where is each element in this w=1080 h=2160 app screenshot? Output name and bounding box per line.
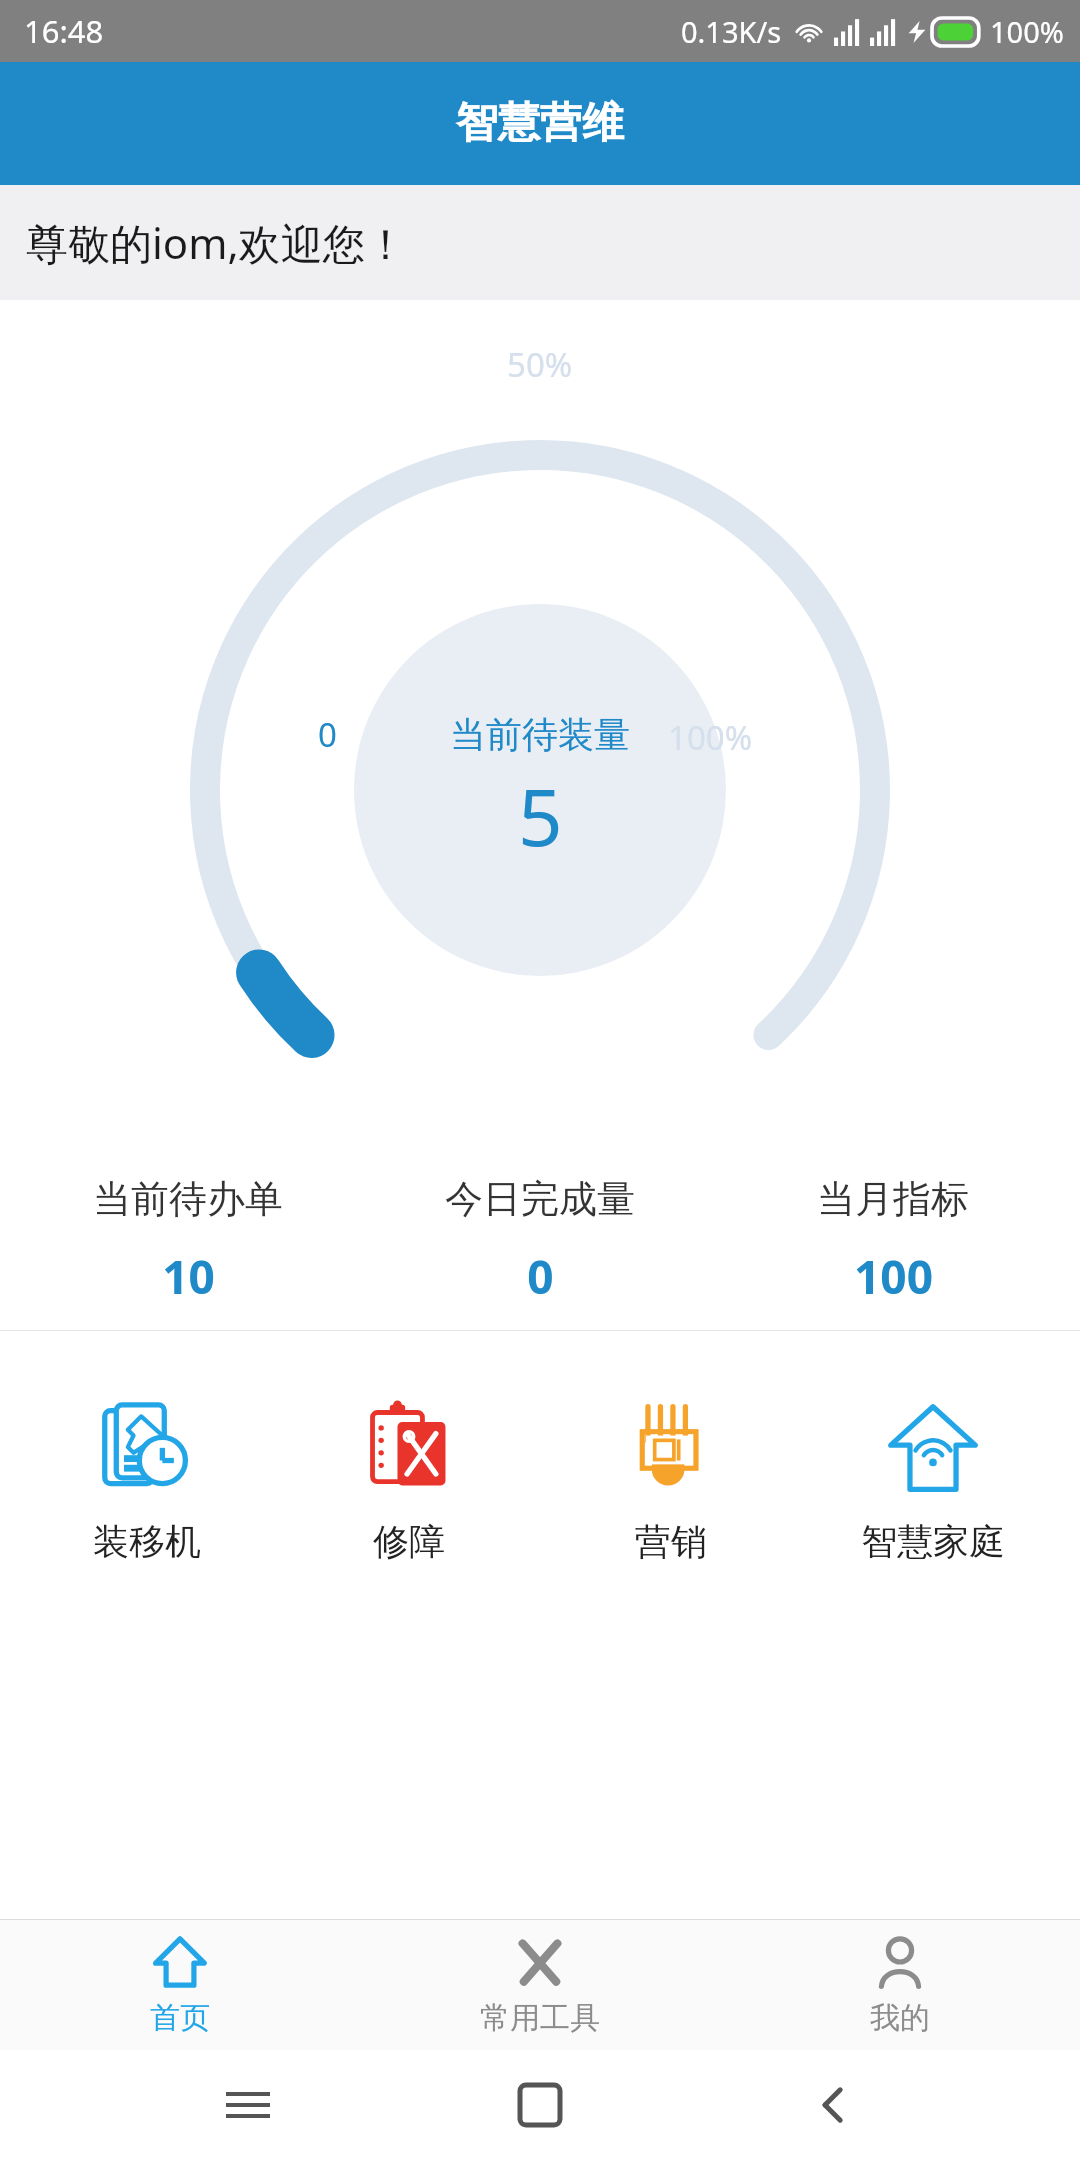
button[interactable]: 修障 <box>294 1401 524 1564</box>
button[interactable]: 智慧家庭 <box>818 1401 1048 1564</box>
button[interactable]: Back <box>788 2060 878 2150</box>
staticText: 常用工具 <box>480 1999 600 2037</box>
staticText: 智慧营维 <box>456 97 624 150</box>
staticText: 修障 <box>373 1519 445 1564</box>
button[interactable]: 常用工具 <box>360 1920 720 2050</box>
staticText: 0.13K/s <box>681 12 782 51</box>
button[interactable]: 我的 <box>720 1920 1080 2050</box>
staticText: 10 <box>162 1245 215 1308</box>
staticText: 今日完成量 <box>445 1175 635 1223</box>
button[interactable]: 今日完成量 <box>375 1175 705 1308</box>
button[interactable]: 当前待办单 <box>23 1175 353 1308</box>
staticText: 当月指标 <box>817 1175 969 1223</box>
staticText: 当前待装量 <box>450 712 630 757</box>
button[interactable]: Home <box>495 2060 585 2150</box>
staticText: 100 <box>854 1245 933 1308</box>
staticText: 我的 <box>870 1999 930 2037</box>
button[interactable]: 当月指标 <box>728 1175 1058 1308</box>
button[interactable]: Recent apps <box>203 2060 293 2150</box>
button[interactable]: 装移机 <box>32 1401 262 1564</box>
staticText: 营销 <box>635 1519 707 1564</box>
staticText: 0 <box>318 712 337 757</box>
staticText: 100% <box>668 715 753 760</box>
staticText: 首页 <box>150 1999 210 2037</box>
staticText: 0 <box>527 1245 554 1308</box>
staticText: 16:48 <box>24 10 104 52</box>
staticText: 当前待办单 <box>93 1175 283 1223</box>
button[interactable]: 首页 <box>0 1920 360 2050</box>
staticText: 5 <box>518 763 563 869</box>
staticText: 装移机 <box>93 1519 201 1564</box>
button[interactable]: 营销 <box>556 1401 786 1564</box>
staticText: 智慧家庭 <box>861 1519 1005 1564</box>
staticText: 尊敬的iom,欢迎您！ <box>26 214 407 271</box>
staticText: 100% <box>990 12 1064 51</box>
staticText: 50% <box>507 342 573 387</box>
